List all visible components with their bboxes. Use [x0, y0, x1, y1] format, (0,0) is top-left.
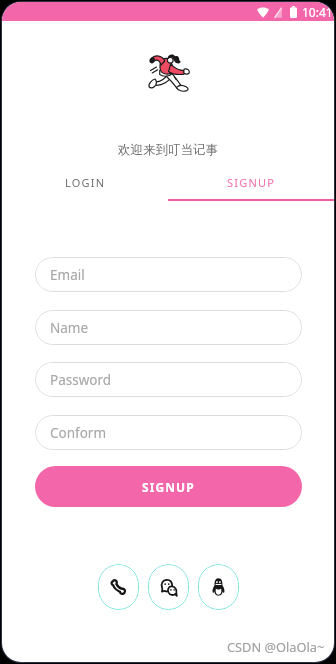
staticText: LOGIN [65, 175, 106, 190]
button[interactable]: Password [35, 362, 302, 397]
staticText: 欢迎来到叮当记事 [2, 142, 334, 158]
button[interactable]: QQ login [198, 564, 239, 610]
button[interactable]: Name [35, 310, 302, 345]
button[interactable]: Email [35, 257, 302, 292]
staticText: Name [50, 319, 89, 337]
staticText: Email [50, 266, 85, 284]
button[interactable]: LOGIN [2, 168, 168, 196]
button[interactable]: Conform [35, 415, 302, 450]
staticText: 10:41 [302, 4, 333, 20]
staticText: Conform [50, 424, 107, 442]
staticText: SIGNUP [227, 175, 276, 190]
staticText: Password [50, 371, 112, 389]
button[interactable]: WeChat login [148, 564, 189, 610]
staticText: SIGNUP [142, 479, 195, 495]
staticText: CSDN @OlaOla~ [227, 638, 325, 655]
button[interactable]: SIGNUP [35, 466, 302, 507]
button[interactable]: SIGNUP [168, 168, 334, 196]
button[interactable]: Phone login [98, 564, 139, 610]
